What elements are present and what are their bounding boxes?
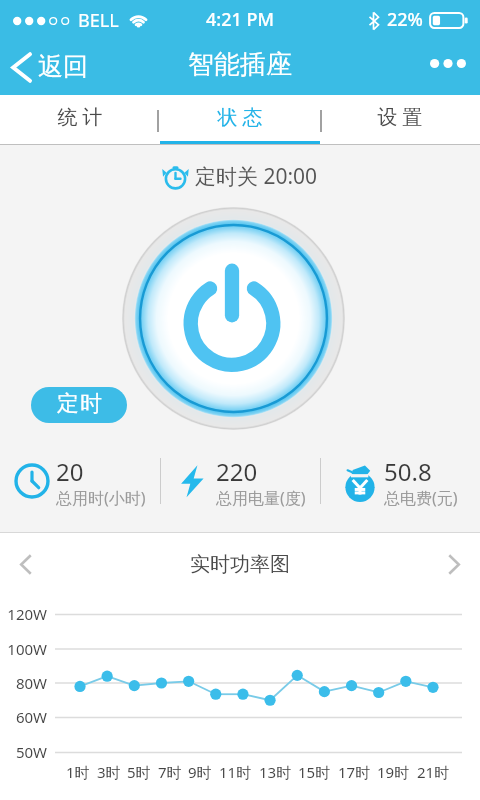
staticText: 总用电量(度) (216, 487, 306, 509)
staticText: 设置 (375, 105, 425, 130)
button[interactable]: Power toggle (122, 207, 345, 430)
staticText: 1时 (66, 762, 90, 782)
staticText: 20 (56, 455, 84, 488)
staticText: 统计 (55, 105, 105, 130)
button[interactable]: 定时 (31, 387, 127, 423)
staticText: 总用时(小时) (56, 487, 146, 509)
staticText: 60W (0, 707, 47, 727)
staticText: 22% (387, 7, 423, 32)
staticText: 80W (0, 673, 47, 693)
staticText: 实时功率图 (190, 552, 290, 577)
staticText: 100W (0, 639, 47, 659)
staticText: 7时 (158, 762, 182, 782)
staticText: 15时 (298, 762, 331, 782)
button[interactable]: 状态 (160, 95, 320, 144)
staticText: 19时 (377, 762, 410, 782)
staticText: 220 (216, 455, 258, 488)
staticText: 5时 (127, 762, 151, 782)
button[interactable]: 220 (161, 451, 320, 511)
button[interactable]: Previous (0, 543, 51, 586)
staticText: BELL (78, 8, 119, 33)
button[interactable]: Next (429, 543, 480, 586)
staticText: 11时 (219, 762, 252, 782)
staticText: 13时 (259, 762, 292, 782)
staticText: 定时 (56, 390, 103, 418)
button[interactable]: 定时关 20:00 (162, 162, 318, 191)
staticText: 21时 (417, 762, 450, 782)
staticText: 定时关 20:00 (195, 162, 318, 191)
button[interactable]: 20 (0, 451, 160, 511)
staticText: 状态 (215, 105, 265, 130)
button[interactable]: 50.8 (321, 451, 480, 511)
staticText: 返回 (38, 51, 88, 82)
staticText: 50.8 (384, 455, 432, 488)
button[interactable]: 统计 (0, 95, 160, 144)
staticText: 120W (0, 604, 47, 624)
staticText: 50W (0, 742, 47, 762)
staticText: 3时 (97, 762, 121, 782)
button[interactable]: 设置 (320, 95, 480, 144)
staticText: 总电费(元) (384, 487, 458, 509)
staticText: 17时 (338, 762, 371, 782)
staticText: 9时 (188, 762, 212, 782)
staticText: 4:21 PM (206, 7, 274, 32)
button[interactable]: More options (416, 43, 480, 84)
button[interactable]: 返回 (0, 44, 102, 91)
staticText: 智能插座 (188, 48, 292, 81)
